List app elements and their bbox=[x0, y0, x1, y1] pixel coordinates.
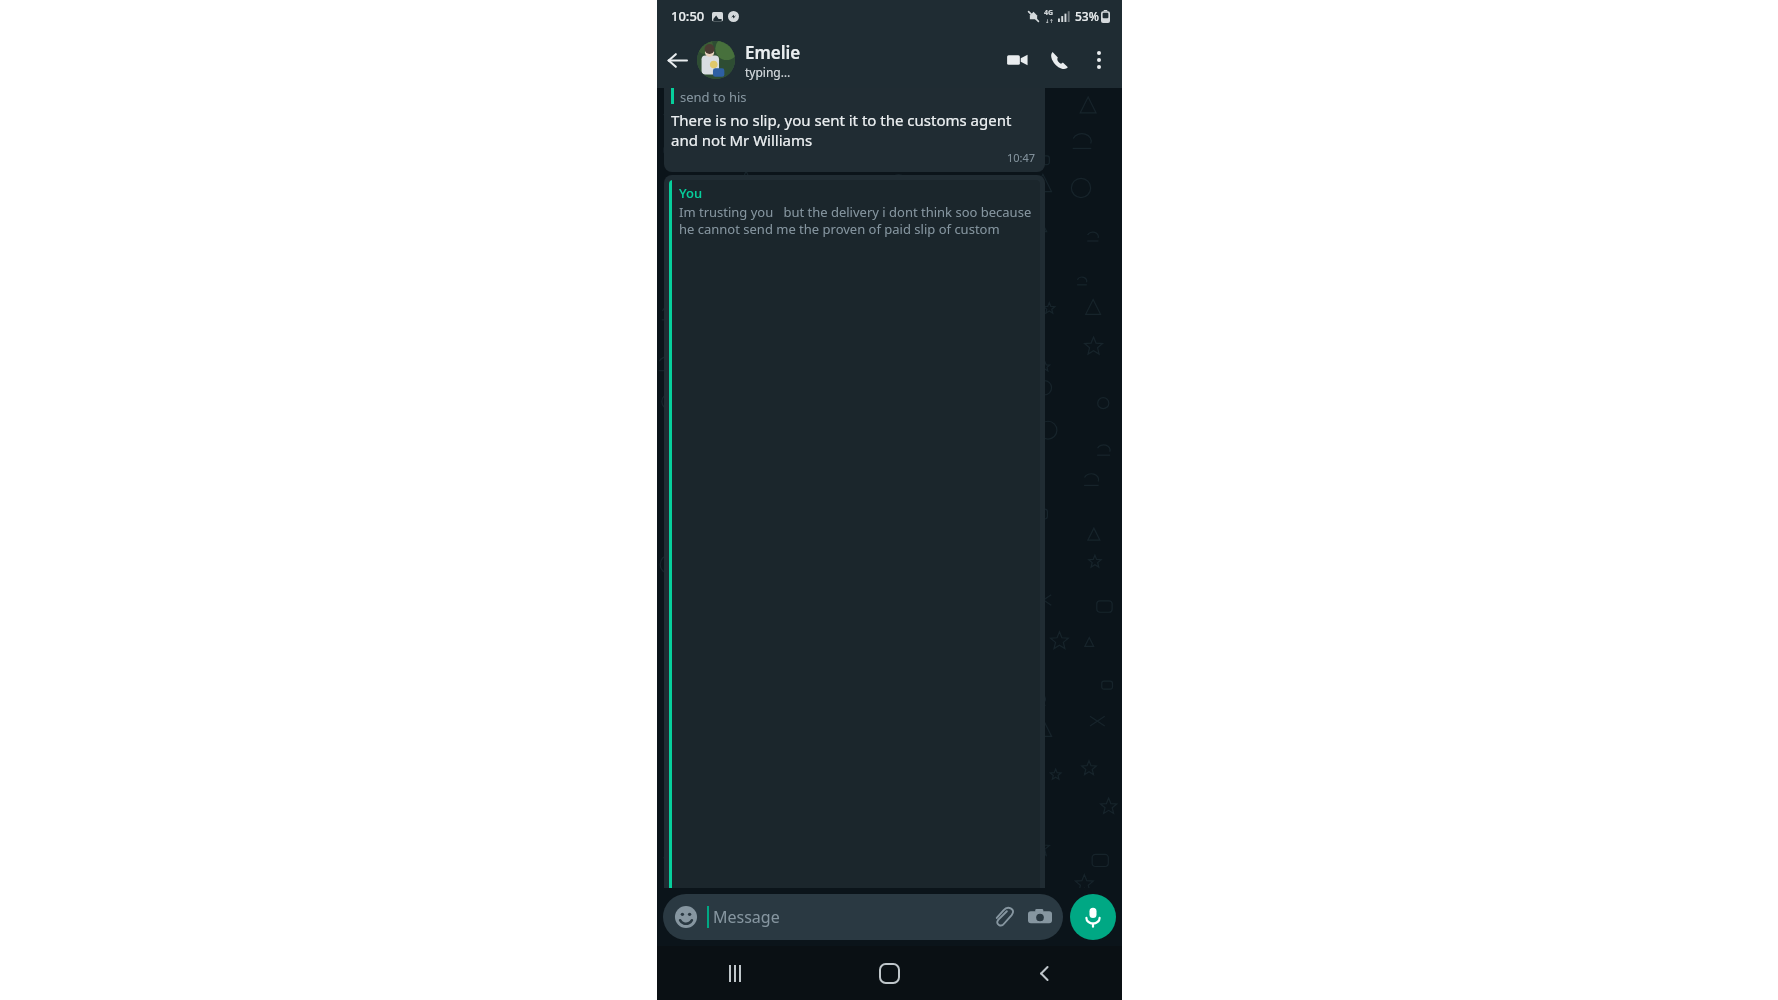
staticText: typing… bbox=[745, 64, 791, 80]
staticText: Im trusting you but the delivery i dont … bbox=[679, 203, 1034, 238]
staticText: 53% bbox=[1075, 8, 1099, 24]
staticText: 4G bbox=[1044, 8, 1054, 18]
staticText: Emelie bbox=[745, 41, 801, 64]
staticText: You bbox=[679, 184, 703, 202]
button[interactable]: Home bbox=[812, 946, 967, 1000]
staticText: send to his bbox=[680, 88, 747, 104]
staticText: There is no slip, you sent it to the cus… bbox=[671, 110, 1036, 150]
staticText: 10:50 bbox=[671, 7, 705, 25]
button[interactable]: Voice call bbox=[1038, 39, 1080, 81]
staticText: ↓↑ bbox=[1045, 18, 1054, 24]
button[interactable]: Back bbox=[967, 946, 1122, 1000]
button[interactable]: Voice message bbox=[1070, 894, 1116, 940]
button[interactable]: Camera bbox=[1028, 905, 1052, 929]
button[interactable]: Emoji bbox=[674, 905, 698, 929]
button[interactable]: More options bbox=[1080, 41, 1118, 79]
staticText: Message bbox=[713, 906, 991, 928]
button[interactable]: Recents bbox=[657, 946, 812, 1000]
button[interactable]: Video call bbox=[996, 39, 1038, 81]
staticText: 10:47 bbox=[1007, 150, 1036, 165]
button[interactable]: Emoji bbox=[663, 894, 1063, 940]
button[interactable]: Back bbox=[657, 40, 697, 80]
button[interactable]: Attach bbox=[991, 905, 1015, 929]
button[interactable]: Emelie bbox=[697, 32, 996, 88]
button[interactable]: send to his bbox=[664, 88, 1045, 172]
button[interactable]: You bbox=[664, 175, 1045, 1000]
